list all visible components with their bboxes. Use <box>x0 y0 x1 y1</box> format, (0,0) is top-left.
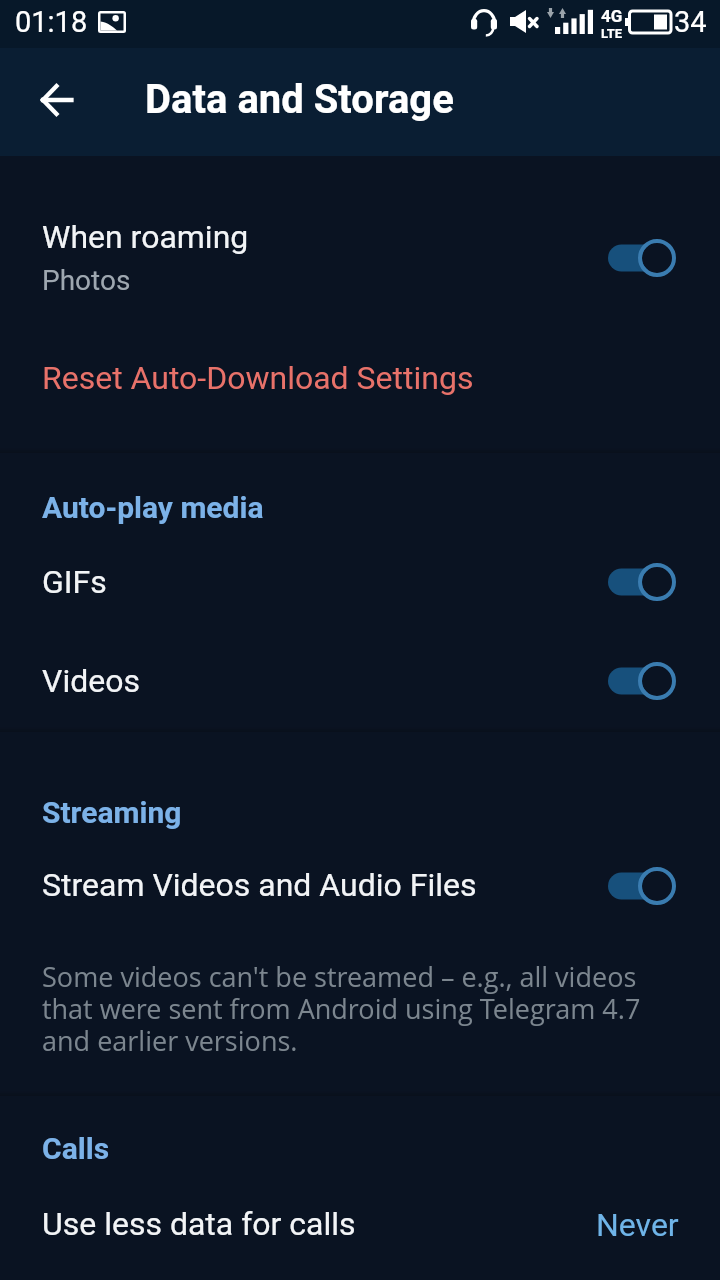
staticText: 01:18 <box>15 5 88 39</box>
staticText: Stream Videos and Audio Files <box>42 866 477 904</box>
staticText: Photos <box>42 264 131 297</box>
staticText: Streaming <box>42 795 182 830</box>
button[interactable]: Toggle <box>608 657 678 705</box>
staticText: Data and Storage <box>145 76 454 123</box>
staticText: LTE <box>601 26 623 41</box>
staticText: Use less data for calls <box>42 1205 356 1243</box>
staticText: GIFs <box>42 563 107 601</box>
staticText: Reset Auto-Download Settings <box>42 359 474 397</box>
button[interactable] <box>0 533 720 632</box>
staticText: 34 <box>674 5 707 39</box>
button[interactable]: Back <box>8 52 104 148</box>
button[interactable] <box>0 837 720 936</box>
button[interactable]: Toggle <box>608 862 678 910</box>
staticText: Never <box>596 1206 679 1244</box>
staticText: When roaming <box>42 218 249 256</box>
staticText: Auto-play media <box>42 490 264 525</box>
button[interactable]: Toggle <box>608 558 678 606</box>
staticText: Some videos can't be streamed – e.g., al… <box>42 958 646 1059</box>
button[interactable]: Toggle <box>608 234 678 282</box>
button[interactable] <box>0 1176 720 1275</box>
staticText: Videos <box>42 662 140 700</box>
button[interactable] <box>0 632 720 731</box>
button[interactable] <box>0 162 720 322</box>
staticText: Calls <box>42 1131 110 1166</box>
staticText: 4G <box>601 6 623 26</box>
button[interactable] <box>0 322 720 420</box>
